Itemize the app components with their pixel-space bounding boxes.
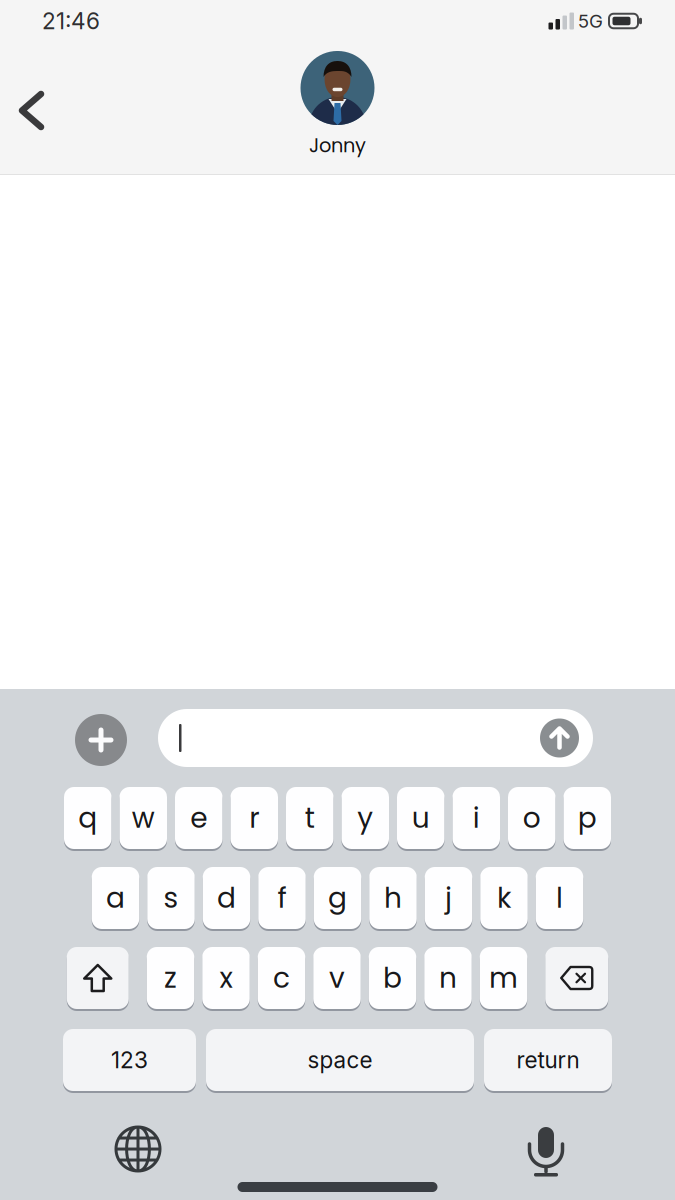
button[interactable]: Delete [545,947,608,1009]
staticText: v [329,958,345,998]
button[interactable]: a [92,867,139,929]
staticText: y [357,798,373,838]
staticText: s [163,878,178,918]
staticText: w [132,798,155,838]
staticText: a [106,878,125,918]
staticText: j [445,878,452,918]
staticText: l [556,878,563,918]
staticText: d [217,878,236,918]
button[interactable]: Next keyboard [0,1127,160,1171]
button[interactable]: o [508,787,555,849]
staticText: x [219,958,232,998]
button[interactable]: b [369,947,416,1009]
staticText: m [489,958,518,998]
button[interactable]: i [452,787,500,849]
staticText: t [305,798,315,838]
button[interactable]: s [147,867,195,929]
button[interactable]: k [480,867,528,929]
button[interactable]: c [258,947,305,1009]
button[interactable]: m [480,947,527,1009]
button[interactable]: r [230,787,278,849]
button[interactable]: v [313,947,361,1009]
staticText: c [273,958,290,998]
button[interactable]: Numbers [63,1029,196,1091]
staticText: Jonny [309,132,366,159]
button[interactable]: Jonny contact details [300,51,374,159]
staticText: p [578,798,597,838]
staticText: u [412,798,430,838]
staticText: r [249,798,259,838]
button[interactable]: y [341,787,389,849]
button[interactable]: Send [540,718,579,757]
staticText: h [384,878,402,918]
staticText: 123 [111,1047,148,1073]
button[interactable]: Space [206,1029,474,1091]
staticText: b [383,958,402,998]
button[interactable]: x [202,947,250,1009]
button[interactable]: t [286,787,333,849]
staticText: 21:46 [42,8,100,34]
button[interactable]: d [203,867,250,929]
button[interactable]: More options [75,714,127,766]
button[interactable]: j [425,867,472,929]
staticText: e [190,798,207,838]
staticText: z [164,958,177,998]
button[interactable]: q [64,787,111,849]
button[interactable]: Dictation [529,1127,675,1176]
staticText: g [328,878,347,918]
button[interactable]: Back [0,84,51,137]
button[interactable]: g [314,867,361,929]
staticText: n [439,958,457,998]
button[interactable]: f [258,867,306,929]
button[interactable]: n [424,947,472,1009]
button[interactable]: Return [484,1029,612,1091]
button[interactable]: Shift [67,947,129,1009]
button[interactable]: h [369,867,417,929]
staticText: 5G [578,10,603,32]
button[interactable]: e [175,787,222,849]
staticText: q [78,798,97,838]
button[interactable]: u [397,787,444,849]
button[interactable]: l [536,867,583,929]
button[interactable]: z [147,947,194,1009]
staticText: o [523,798,541,838]
staticText: space [307,1047,372,1073]
button[interactable]: w [119,787,167,849]
staticText: k [497,878,511,918]
staticText: return [516,1047,579,1073]
button[interactable]: p [563,787,611,849]
staticText: f [277,878,286,918]
staticText: i [473,798,480,838]
